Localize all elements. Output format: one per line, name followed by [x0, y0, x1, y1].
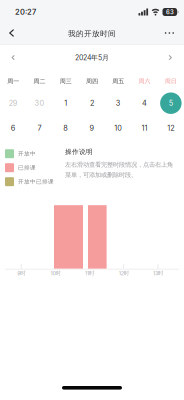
staticText: 20:27: [15, 7, 36, 16]
staticText: 周五: [112, 77, 124, 85]
button[interactable]: 2024年5月9日: [79, 116, 105, 141]
button[interactable]: 2024年5月7日: [26, 116, 53, 141]
staticText: 6: [11, 124, 16, 133]
staticText: 周一: [7, 77, 19, 85]
button[interactable]: 2024年5月3日: [105, 91, 131, 116]
staticText: 12时: [119, 270, 129, 277]
button[interactable]: More: [165, 23, 184, 43]
button[interactable]: 2024年5月8日: [53, 116, 79, 141]
button[interactable]: 2024年5月5日: [158, 91, 184, 116]
button[interactable]: Previous month: [0, 50, 15, 65]
staticText: 3: [116, 99, 121, 108]
button[interactable]: 2024年5月10日: [105, 116, 131, 141]
staticText: 63: [166, 8, 174, 16]
staticText: 9时: [17, 270, 25, 277]
button[interactable]: 2024年5月6日: [0, 116, 26, 141]
staticText: 周四: [86, 77, 98, 85]
staticText: 13时: [153, 270, 163, 277]
staticText: 周三: [60, 77, 72, 85]
button[interactable]: 2024年5月12日: [158, 116, 184, 141]
button[interactable]: 2024年5月1日: [53, 91, 79, 116]
staticText: 11时: [85, 270, 94, 277]
staticText: 开放中: [18, 150, 36, 157]
staticText: 7: [37, 124, 41, 133]
button[interactable]: 2024年5月30日: [26, 91, 53, 116]
staticText: 1: [64, 99, 67, 108]
button[interactable]: 2024年5月4日: [131, 91, 158, 116]
button[interactable]: 2024年5月2日: [79, 91, 105, 116]
staticText: 29: [9, 99, 18, 108]
staticText: 周二: [33, 77, 45, 85]
staticText: 30: [34, 99, 44, 108]
staticText: 10时: [50, 270, 60, 277]
button[interactable]: 2024年5月29日: [0, 91, 26, 116]
staticText: 周六: [139, 77, 151, 85]
button[interactable]: 2024年5月11日: [131, 116, 158, 141]
staticText: 已排课: [18, 164, 36, 171]
staticText: 5: [169, 99, 173, 108]
staticText: 操作说明: [65, 148, 93, 156]
staticText: 开放中已排课: [18, 178, 54, 185]
staticText: 11: [142, 124, 148, 133]
staticText: 左右滑动查看完整时段情况，点击右上角: [65, 161, 173, 168]
staticText: 周日: [165, 77, 177, 85]
staticText: 4: [142, 99, 147, 108]
button[interactable]: Next month: [168, 50, 184, 65]
staticText: 8: [63, 124, 68, 133]
staticText: 9: [89, 124, 94, 133]
staticText: 2024年5月: [75, 53, 109, 62]
staticText: 2: [90, 99, 94, 108]
button[interactable]: Back: [0, 22, 15, 44]
staticText: 10: [114, 124, 122, 133]
staticText: 我的开放时间: [68, 29, 116, 39]
staticText: 12: [167, 124, 174, 133]
staticText: 菜单，可添加或删除时段。: [65, 171, 137, 179]
